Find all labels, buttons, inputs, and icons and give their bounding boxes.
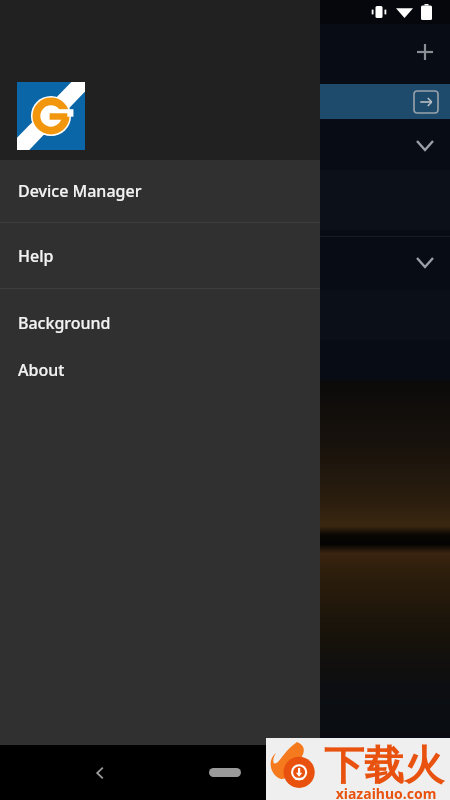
staticText: Help [18,245,54,267]
staticText: xiazaihuo.com [324,784,448,800]
staticText: Device Manager [18,180,142,202]
button[interactable]: Device Manager [0,160,320,222]
button[interactable]: Help [0,223,320,288]
button[interactable]: Open [0,84,450,119]
button[interactable]: xiazaihuo.com watermark [266,738,450,800]
staticText: 下载火 [324,740,444,790]
button[interactable]: Expand [404,247,446,277]
button[interactable]: Background [0,299,320,346]
button[interactable]: Add [404,31,446,73]
button[interactable]: Expand [404,130,446,160]
staticText: About [18,359,65,381]
button[interactable]: Home [203,745,247,800]
staticText: Background [18,312,111,334]
button[interactable]: Back [78,745,122,800]
button[interactable]: Open [414,91,438,113]
button[interactable]: App logo [17,82,85,150]
button[interactable]: About [0,346,320,393]
